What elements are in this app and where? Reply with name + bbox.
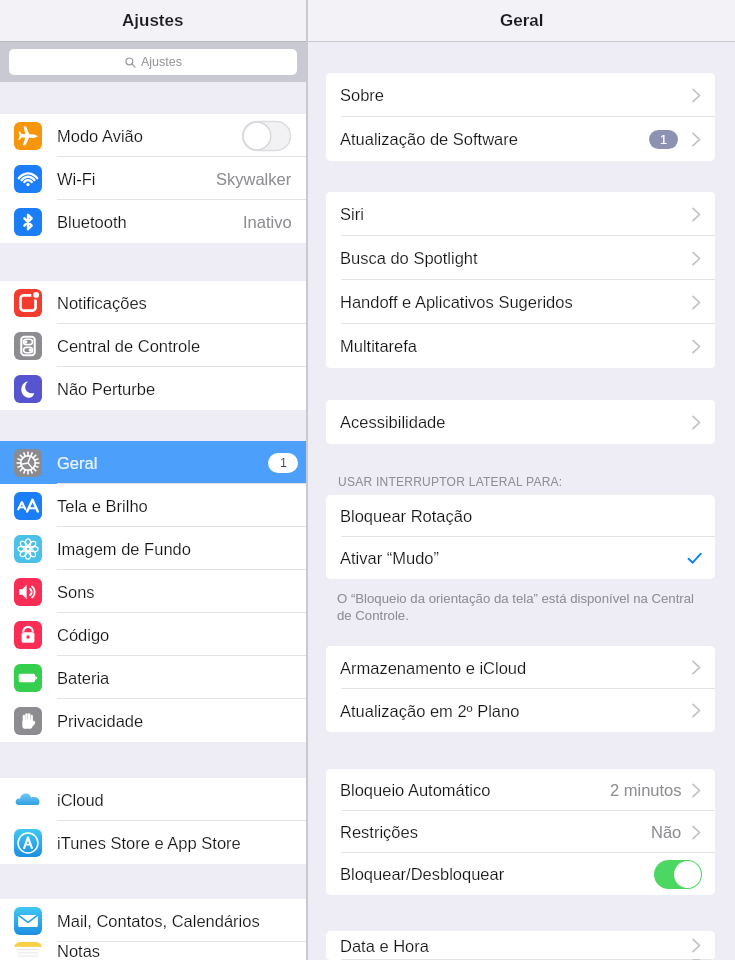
button[interactable]: Central de Controle <box>0 324 306 367</box>
staticText: Modo Avião <box>57 127 143 145</box>
staticText: Handoff e Aplicativos Sugeridos <box>340 293 573 311</box>
button[interactable]: Tela e Brilho <box>0 484 306 527</box>
staticText: Bluetooth <box>57 213 127 231</box>
staticText: Notas <box>57 942 101 960</box>
button[interactable]: Bloqueio Automático <box>326 769 715 811</box>
staticText: Acessibilidade <box>340 413 446 431</box>
staticText: Ativar “Mudo” <box>340 549 440 567</box>
staticText: Não <box>651 823 682 841</box>
staticText: iCloud <box>57 791 104 809</box>
staticText: Mail, Contatos, Calendários <box>57 912 260 930</box>
staticText: Sons <box>57 583 95 601</box>
staticText: Bateria <box>57 669 110 687</box>
staticText: Ajustes <box>141 55 182 69</box>
button[interactable]: Geral <box>0 441 306 484</box>
button[interactable]: Imagem de Fundo <box>0 527 306 570</box>
staticText: USAR INTERRUPTOR LATERAL PARA: <box>338 475 563 488</box>
staticText: Ajustes <box>122 11 184 30</box>
button[interactable]: Bateria <box>0 656 306 699</box>
button[interactable]: Não Perturbe <box>0 367 306 410</box>
staticText: Geral <box>57 454 98 472</box>
staticText: Wi-Fi <box>57 170 96 188</box>
staticText: Busca do Spotlight <box>340 249 478 267</box>
staticText: Tela e Brilho <box>57 497 148 515</box>
button[interactable]: Notificações <box>0 281 306 324</box>
staticText: Skywalker <box>216 170 292 188</box>
button[interactable]: Sons <box>0 570 306 613</box>
staticText: Data e Hora <box>340 937 429 955</box>
staticText: Imagem de Fundo <box>57 540 191 558</box>
staticText: Bloquear Rotação <box>340 507 473 525</box>
button[interactable]: Acessibilidade <box>326 400 715 444</box>
staticText: Multitarefa <box>340 337 418 355</box>
button[interactable]: Notas <box>0 942 306 960</box>
staticText: 2 minutos <box>610 781 682 799</box>
staticText: Atualização de Software <box>340 130 518 148</box>
button[interactable]: Modo Avião toggle <box>242 121 291 151</box>
staticText: Central de Controle <box>57 337 201 355</box>
button[interactable]: Siri <box>326 192 715 236</box>
staticText: Código <box>57 626 110 644</box>
button[interactable]: Código <box>0 613 306 656</box>
button[interactable]: Restrições <box>326 811 715 853</box>
button[interactable]: Wi-Fi <box>0 157 306 200</box>
staticText: iTunes Store e App Store <box>57 834 241 852</box>
button[interactable]: iTunes Store e App Store <box>0 821 306 864</box>
staticText: 1 <box>660 133 667 147</box>
staticText: Restrições <box>340 823 418 841</box>
button[interactable]: Data e Hora <box>326 931 715 960</box>
button[interactable]: Atualização em 2º Plano <box>326 689 715 732</box>
staticText: Atualização em 2º Plano <box>340 702 520 720</box>
button[interactable]: Busca do Spotlight <box>326 236 715 280</box>
staticText: Notificações <box>57 294 147 312</box>
button[interactable]: Bloquear/Desbloquear <box>326 853 715 895</box>
staticText: 1 <box>280 456 287 470</box>
button[interactable]: Sobre <box>326 73 715 117</box>
button[interactable]: Bloquear/Desbloquear toggle <box>654 860 702 889</box>
button[interactable]: iCloud <box>0 778 306 821</box>
staticText: Armazenamento e iCloud <box>340 659 527 677</box>
button[interactable]: Ativar “Mudo” <box>326 537 715 579</box>
staticText: Privacidade <box>57 712 144 730</box>
button[interactable]: Multitarefa <box>326 324 715 368</box>
staticText: Siri <box>340 205 364 223</box>
staticText: Bloquear/Desbloquear <box>340 865 505 883</box>
button[interactable]: Privacidade <box>0 699 306 742</box>
button[interactable]: Bloquear Rotação <box>326 495 715 537</box>
button[interactable]: Mail, Contatos, Calendários <box>0 899 306 942</box>
button[interactable]: Modo Avião <box>0 114 306 157</box>
staticText: Bloqueio Automático <box>340 781 491 799</box>
staticText: O “Bloqueio da orientação da tela” está … <box>337 591 695 622</box>
button[interactable]: Atualização de Software <box>326 117 715 161</box>
staticText: Inativo <box>243 213 292 231</box>
staticText: Geral <box>500 11 544 30</box>
button[interactable]: Ajustes <box>9 49 297 75</box>
button[interactable]: Handoff e Aplicativos Sugeridos <box>326 280 715 324</box>
button[interactable]: Bluetooth <box>0 200 306 243</box>
button[interactable]: Armazenamento e iCloud <box>326 646 715 689</box>
staticText: Não Perturbe <box>57 380 156 398</box>
staticText: Sobre <box>340 86 385 104</box>
